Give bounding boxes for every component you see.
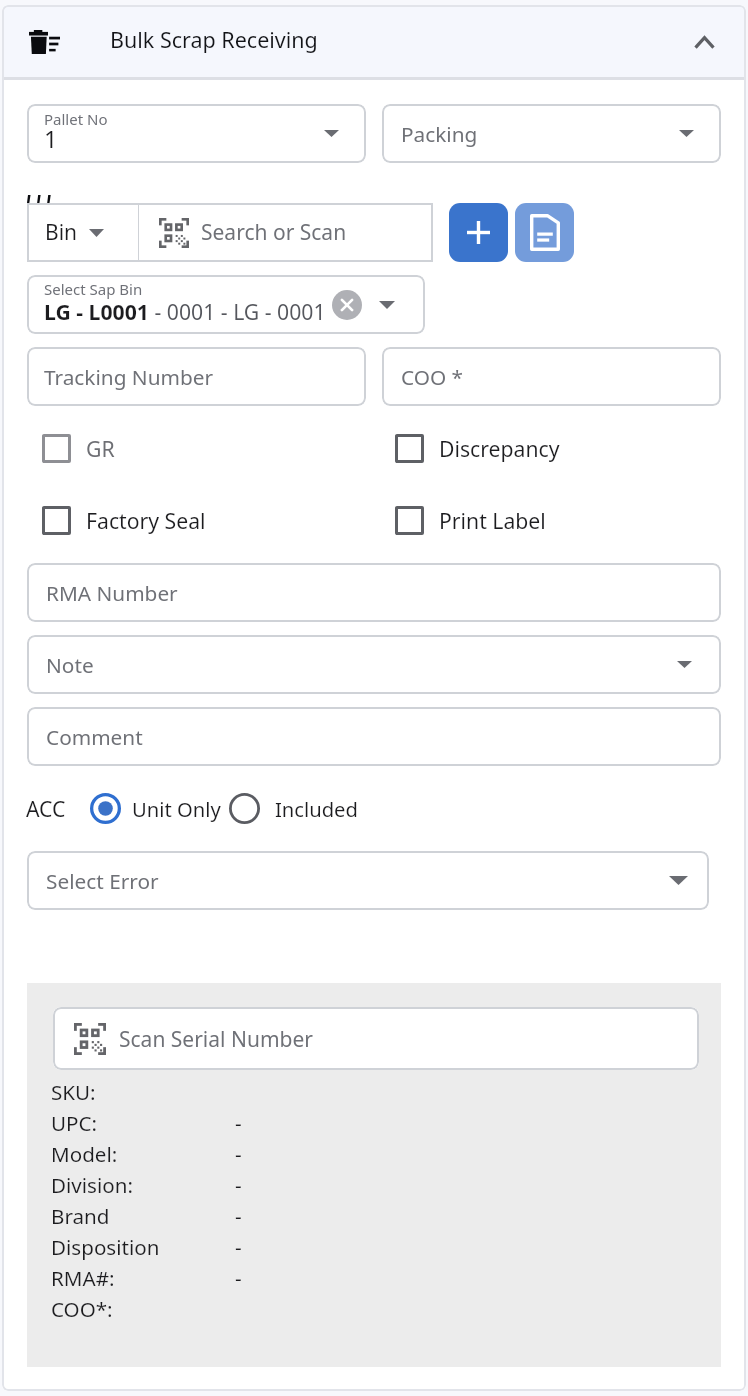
staticText: Tracking Number xyxy=(44,363,214,391)
staticText: COO * xyxy=(401,363,464,391)
button[interactable]: Select Sap Bin xyxy=(27,275,425,334)
staticText: Model: xyxy=(51,1140,118,1168)
staticText: Select Sap Bin xyxy=(44,279,143,299)
staticText: Pallet No xyxy=(44,109,108,129)
staticText: - xyxy=(235,1202,242,1230)
staticText: Factory Seal xyxy=(86,506,206,535)
button[interactable]: Factory Seal xyxy=(42,506,206,535)
staticText: SKU: xyxy=(51,1078,96,1106)
button[interactable]: Bulk scrap xyxy=(2,5,746,77)
staticText: Print Label xyxy=(439,506,546,535)
button[interactable]: Note xyxy=(27,635,721,694)
staticText: Search or Scan xyxy=(201,218,347,247)
staticText: Bin xyxy=(45,218,78,247)
other: Bulk scrap xyxy=(29,30,60,55)
staticText: LG - L0001 xyxy=(44,297,149,326)
staticText: Discrepancy xyxy=(439,434,560,463)
staticText: Brand xyxy=(51,1202,110,1230)
button[interactable]: Discrepancy xyxy=(395,434,560,463)
button[interactable]: Clear xyxy=(332,290,362,320)
button[interactable]: Unit Only xyxy=(90,793,221,824)
staticText: Disposition xyxy=(51,1233,160,1261)
staticText: - xyxy=(235,1233,242,1261)
staticText: Note xyxy=(46,651,94,679)
staticText: ACC xyxy=(26,794,66,823)
staticText: RMA Number xyxy=(46,579,178,607)
staticText: RMA#: xyxy=(51,1264,115,1292)
staticText: GR xyxy=(86,434,115,463)
staticText: - xyxy=(235,1264,242,1292)
staticText: Packing xyxy=(401,120,478,148)
staticText: Scan Serial Number xyxy=(119,1025,313,1054)
button[interactable]: Scan Serial Number xyxy=(53,1007,699,1070)
staticText: Unit Only xyxy=(132,795,221,823)
staticText: Select Error xyxy=(46,867,159,895)
staticText: Division: xyxy=(51,1171,134,1199)
staticText: Comment xyxy=(46,723,143,751)
staticText: Bulk Scrap Receiving xyxy=(110,25,318,54)
button[interactable]: Packing xyxy=(382,104,721,163)
button[interactable]: Bin xyxy=(27,203,138,262)
staticText: Included xyxy=(275,795,358,823)
button[interactable]: Pallet No xyxy=(27,104,366,163)
button[interactable]: GR xyxy=(42,434,115,463)
staticText: COO*: xyxy=(51,1295,113,1323)
staticText: UPC: xyxy=(51,1109,98,1137)
button[interactable]: Collapse xyxy=(683,21,725,63)
staticText: - 0001 - LG - 0001 xyxy=(149,297,326,326)
button[interactable]: Add xyxy=(449,203,508,262)
staticText: - xyxy=(235,1171,242,1199)
button[interactable]: RMA Number xyxy=(27,563,721,622)
button[interactable]: Select Error xyxy=(27,851,709,910)
button[interactable]: Included xyxy=(229,793,358,824)
button[interactable]: Tracking Number xyxy=(27,347,366,406)
staticText: 1 xyxy=(44,123,58,155)
button[interactable]: Comment xyxy=(27,707,721,766)
button[interactable]: Search or Scan xyxy=(139,203,433,262)
staticText: - xyxy=(235,1140,242,1168)
staticText: - xyxy=(235,1109,242,1137)
button[interactable]: Document xyxy=(515,203,574,262)
button[interactable]: COO * xyxy=(382,347,721,406)
button[interactable]: Print Label xyxy=(395,506,546,535)
